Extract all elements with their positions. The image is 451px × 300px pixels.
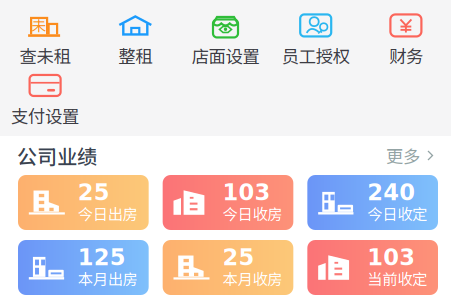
staticText: 未 <box>32 14 47 35</box>
button[interactable]: 未 <box>0 13 90 68</box>
staticText: 查未租 <box>20 43 71 68</box>
staticText: 员工授权 <box>282 43 350 68</box>
staticText: 更多 <box>386 143 420 168</box>
staticText: 240 <box>367 182 415 203</box>
staticText: 店面设置 <box>191 43 259 68</box>
staticText: 财务 <box>389 43 423 68</box>
staticText: 25 <box>222 247 254 268</box>
staticText: 125 <box>78 247 126 268</box>
staticText: 整租 <box>118 43 152 68</box>
staticText: 当前收定 <box>367 269 427 288</box>
button[interactable]: 125 <box>18 240 149 295</box>
staticText: 103 <box>367 247 415 268</box>
button[interactable]: 财务 <box>361 13 451 68</box>
button[interactable]: 更多 <box>386 143 434 168</box>
staticText: 103 <box>222 182 270 203</box>
staticText: 支付设置 <box>11 103 79 128</box>
button[interactable]: 整租 <box>90 13 180 68</box>
button[interactable]: 103 <box>163 175 293 230</box>
button[interactable]: 员工授权 <box>271 13 361 68</box>
staticText: 本月收房 <box>222 269 282 288</box>
button[interactable]: 103 <box>307 240 438 295</box>
button[interactable]: 25 <box>163 240 293 295</box>
staticText: 本月出房 <box>78 269 138 288</box>
staticText: 今日收房 <box>222 204 282 223</box>
staticText: 25 <box>78 182 110 203</box>
staticText: 公司业绩 <box>17 141 97 170</box>
button[interactable]: 支付设置 <box>0 73 90 128</box>
button[interactable]: 店面设置 <box>180 13 271 68</box>
staticText: 今日出房 <box>78 204 138 223</box>
button[interactable]: 240 <box>307 175 438 230</box>
staticText: 今日收定 <box>367 204 427 223</box>
button[interactable]: 25 <box>18 175 149 230</box>
